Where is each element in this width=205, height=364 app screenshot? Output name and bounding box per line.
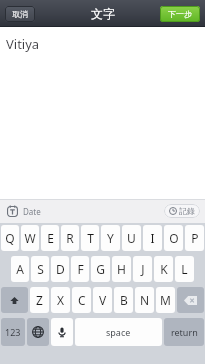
button[interactable]: T xyxy=(81,225,99,251)
staticText: 下一步 xyxy=(168,9,192,19)
staticText: E xyxy=(47,230,54,246)
button[interactable]: U xyxy=(122,225,141,251)
button[interactable]: C xyxy=(72,287,91,313)
button[interactable]: N xyxy=(135,287,154,313)
button[interactable]: Shift xyxy=(1,287,28,313)
staticText: X xyxy=(57,292,65,308)
button[interactable]: Z xyxy=(30,287,49,313)
staticText: B xyxy=(120,292,128,308)
button[interactable]: I xyxy=(143,225,162,251)
staticText: O xyxy=(169,230,179,246)
button[interactable]: 123 xyxy=(1,318,25,346)
staticText: 取消 xyxy=(12,9,28,19)
button[interactable]: W xyxy=(21,225,39,251)
staticText: F xyxy=(77,261,84,277)
button[interactable]: Change keyboard xyxy=(27,318,49,346)
button[interactable]: Y xyxy=(101,225,120,251)
staticText: H xyxy=(117,261,126,277)
button[interactable]: F xyxy=(71,256,89,282)
staticText: 123 xyxy=(5,326,21,338)
button[interactable]: S xyxy=(31,256,49,282)
staticText: Z xyxy=(36,292,43,308)
button[interactable]: 下一步 xyxy=(160,6,200,22)
staticText: A xyxy=(16,261,24,277)
button[interactable]: 記錄 xyxy=(164,204,200,218)
staticText: C xyxy=(78,292,86,308)
staticText: return xyxy=(171,326,198,338)
button[interactable]: K xyxy=(154,256,173,282)
staticText: L xyxy=(181,261,188,277)
staticText: M xyxy=(160,292,171,308)
staticText: D xyxy=(56,261,65,277)
staticText: W xyxy=(24,230,36,246)
button[interactable]: V xyxy=(93,287,112,313)
staticText: Q xyxy=(5,230,15,246)
button[interactable]: return xyxy=(164,318,204,346)
button[interactable]: M xyxy=(156,287,175,313)
button[interactable]: O xyxy=(164,225,183,251)
button[interactable]: A xyxy=(11,256,29,282)
staticText: J xyxy=(141,261,145,277)
staticText: 記錄 xyxy=(179,206,195,216)
button[interactable]: X xyxy=(51,287,70,313)
button[interactable]: R xyxy=(61,225,79,251)
button[interactable]: B xyxy=(114,287,133,313)
staticText: 文字 xyxy=(91,6,115,21)
staticText: K xyxy=(160,261,168,277)
button[interactable]: space xyxy=(75,318,162,346)
button[interactable]: Q xyxy=(1,225,19,251)
staticText: R xyxy=(66,230,74,246)
staticText: Date xyxy=(23,206,41,217)
button[interactable]: Date xyxy=(4,203,43,220)
staticText: V xyxy=(99,292,107,308)
button[interactable]: P xyxy=(185,225,204,251)
button[interactable]: J xyxy=(133,256,152,282)
button[interactable]: D xyxy=(51,256,69,282)
staticText: G xyxy=(96,261,105,277)
button[interactable]: Voice input xyxy=(51,318,73,346)
staticText: N xyxy=(140,292,150,308)
staticText: U xyxy=(127,230,136,246)
staticText: I xyxy=(150,230,155,246)
staticText: Y xyxy=(107,230,114,246)
button[interactable]: 取消 xyxy=(5,6,35,22)
button[interactable]: Backspace xyxy=(177,287,204,313)
button[interactable]: H xyxy=(112,256,131,282)
button[interactable]: E xyxy=(41,225,59,251)
staticText: Vitiya xyxy=(6,35,40,53)
staticText: space xyxy=(106,326,131,338)
button[interactable]: L xyxy=(175,256,194,282)
staticText: T xyxy=(87,230,94,246)
staticText: S xyxy=(37,261,44,277)
staticText: P xyxy=(191,230,199,246)
button[interactable]: G xyxy=(91,256,110,282)
